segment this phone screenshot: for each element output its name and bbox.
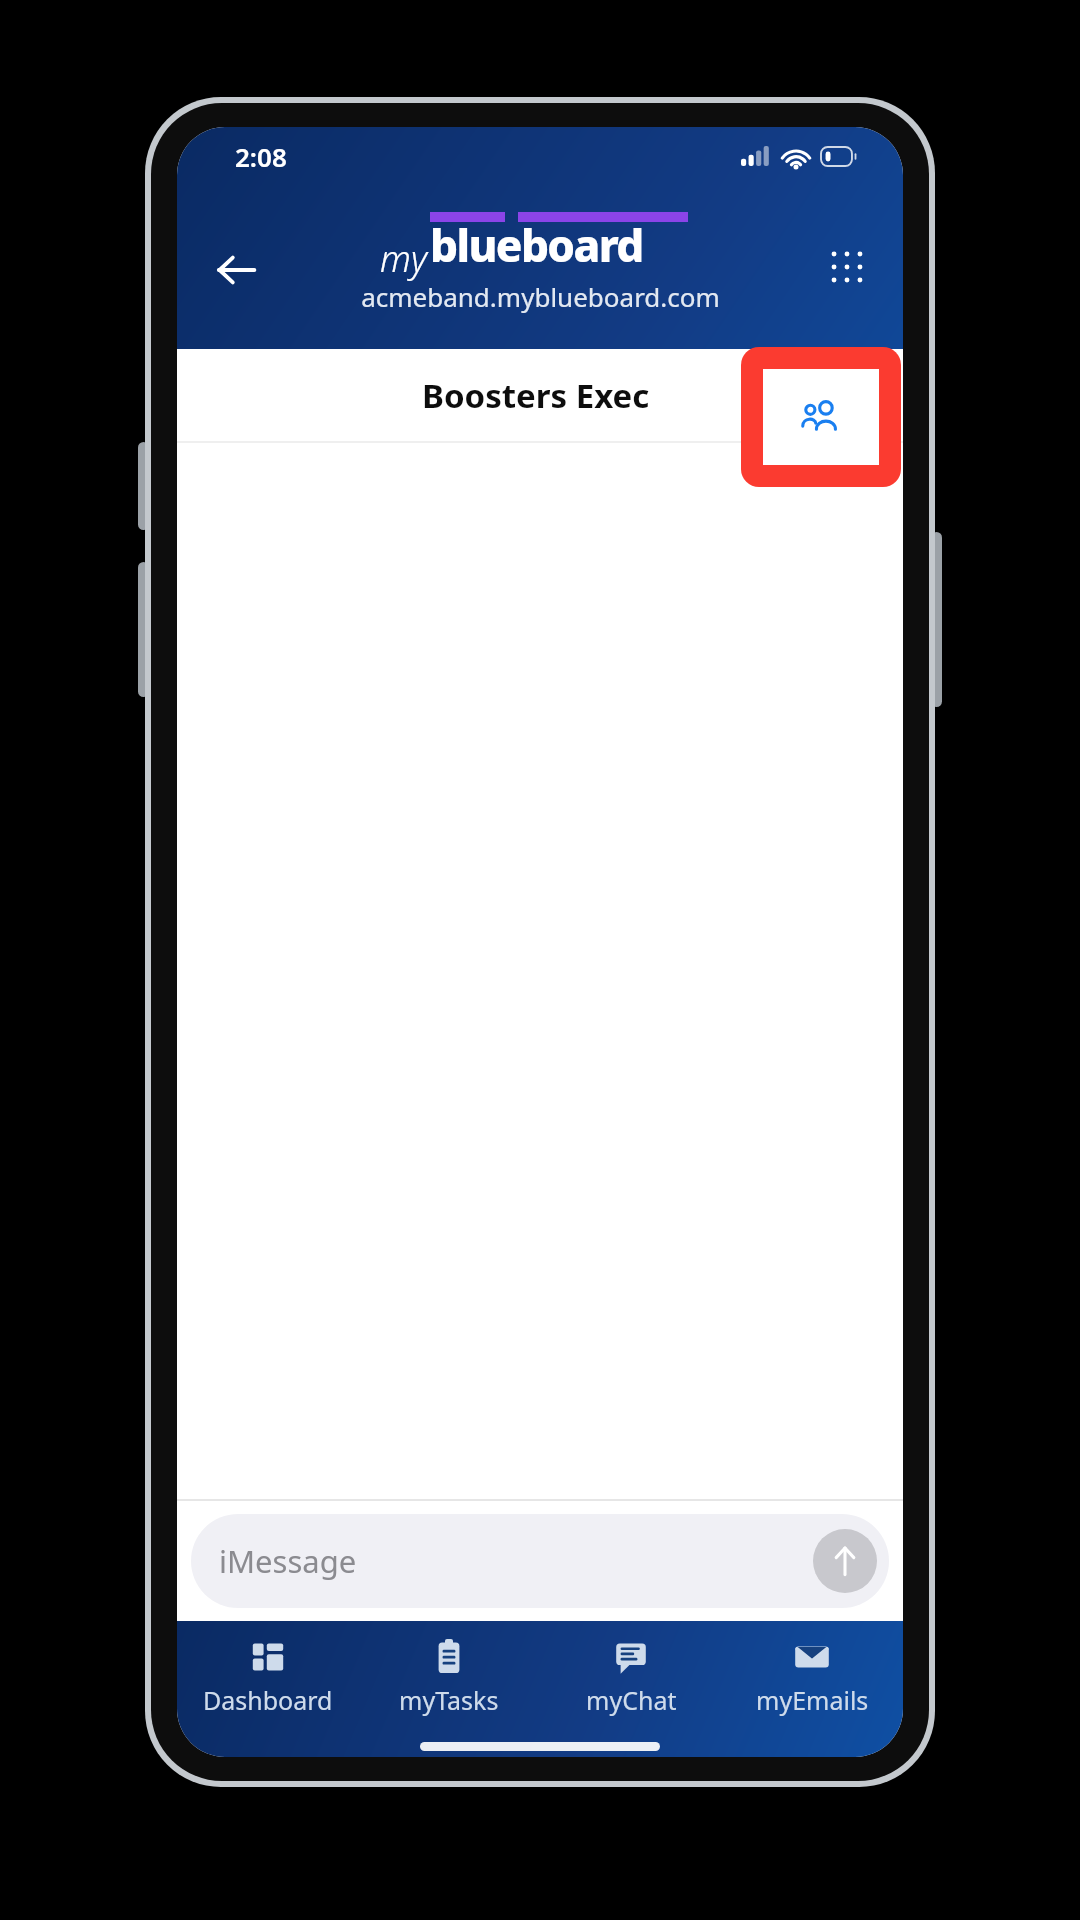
staticText: acmeband.myblueboard.com <box>361 279 720 314</box>
staticText: iMessage <box>219 1540 357 1582</box>
staticText: Dashboard <box>203 1683 333 1717</box>
button[interactable]: iMessage <box>191 1514 889 1608</box>
button[interactable]: Members <box>757 363 821 427</box>
button[interactable]: myChat <box>543 1635 719 1719</box>
staticText: myEmails <box>756 1683 869 1717</box>
button[interactable]: Settings <box>833 363 897 427</box>
button[interactable]: Back <box>197 231 275 309</box>
button[interactable]: Dashboard <box>180 1635 356 1719</box>
button[interactable]: Send <box>813 1529 877 1593</box>
staticText: myTasks <box>399 1683 499 1717</box>
staticText: blueboard <box>430 215 643 275</box>
staticText: 2:08 <box>235 139 287 174</box>
staticText: Boosters Exec <box>422 373 650 418</box>
staticText: my <box>380 234 427 283</box>
button[interactable]: Menu <box>807 227 887 307</box>
staticText: myChat <box>586 1683 677 1717</box>
button[interactable]: myEmails <box>724 1635 900 1719</box>
button[interactable]: myTasks <box>361 1635 537 1719</box>
